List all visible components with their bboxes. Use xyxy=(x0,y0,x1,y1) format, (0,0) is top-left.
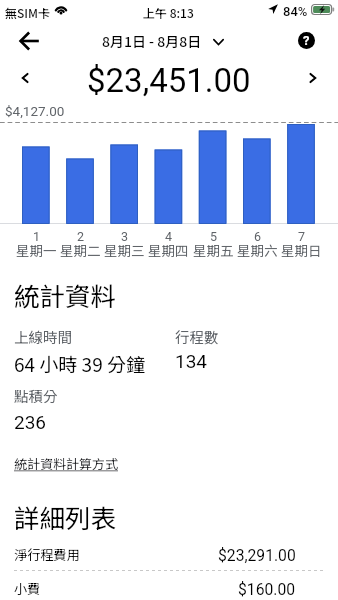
staticText: 星期三 xyxy=(104,240,145,260)
button[interactable]: Next week xyxy=(299,64,327,92)
staticText: $4,127.00 xyxy=(5,103,65,119)
staticText: 淨行程費用 xyxy=(14,545,80,564)
staticText: 星期五 xyxy=(193,240,234,260)
staticText: 詳細列表 xyxy=(14,498,117,535)
staticText: 無SIM卡 xyxy=(5,4,50,21)
button[interactable]: 8月1日 - 8月8日 xyxy=(102,31,224,51)
staticText: 8月1日 - 8月8日 xyxy=(102,31,202,51)
staticText: 64 小時 39 分鐘 xyxy=(14,350,145,378)
staticText: 星期二 xyxy=(60,240,101,260)
staticText: 4 xyxy=(165,229,173,244)
button[interactable]: Help xyxy=(291,25,321,55)
staticText: 星期一 xyxy=(16,240,57,260)
staticText: 84% xyxy=(283,4,308,19)
staticText: ? xyxy=(303,33,310,48)
staticText: 5 xyxy=(210,229,218,244)
staticText: 236 xyxy=(14,411,47,433)
staticText: 7 xyxy=(298,229,306,244)
staticText: 星期四 xyxy=(148,240,189,260)
staticText: 2 xyxy=(77,229,85,244)
staticText: 上線時間 xyxy=(14,326,72,347)
staticText: 統計資料 xyxy=(14,276,117,313)
staticText: 3 xyxy=(121,229,129,244)
button[interactable]: 小費 xyxy=(0,575,338,600)
staticText: $160.00 xyxy=(238,580,296,598)
button[interactable]: Previous week xyxy=(11,64,39,92)
staticText: 點積分 xyxy=(14,385,58,406)
staticText: 134 xyxy=(175,350,208,372)
staticText: 星期日 xyxy=(281,240,322,260)
staticText: 6 xyxy=(254,229,262,244)
staticText: 行程數 xyxy=(175,326,219,347)
staticText: 上午 8:13 xyxy=(143,4,194,21)
staticText: 星期六 xyxy=(237,240,278,260)
staticText: 小費 xyxy=(14,579,41,598)
staticText: 統計資料計算方式 xyxy=(14,454,119,473)
button[interactable]: 淨行程費用 xyxy=(0,541,338,568)
staticText: $23,451.00 xyxy=(87,61,251,100)
staticText: 1 xyxy=(33,229,41,244)
staticText: $23,291.00 xyxy=(218,546,296,564)
button[interactable]: Back xyxy=(11,23,47,59)
button[interactable]: 統計資料計算方式 xyxy=(14,454,119,473)
